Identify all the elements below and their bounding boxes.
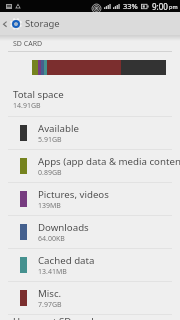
button[interactable]: Back	[0, 12, 180, 35]
staticText: Downloads	[38, 221, 89, 234]
staticText: Available	[38, 122, 79, 135]
button[interactable]: Misc.	[0, 282, 180, 314]
staticText: Pictures, videos	[38, 188, 109, 201]
staticText: Misc.	[38, 287, 62, 300]
button[interactable]: Downloads	[0, 216, 180, 248]
staticText: 9:00	[152, 1, 168, 12]
other: Back	[1, 20, 9, 28]
staticText: Total space	[13, 88, 64, 101]
button[interactable]: Pictures, videos	[0, 183, 180, 215]
staticText: 33%	[123, 1, 138, 11]
button[interactable]: Unmount SD card	[0, 315, 180, 320]
staticText: 0.89GB	[38, 168, 62, 178]
button[interactable]: Available	[0, 117, 180, 149]
staticText: Apps (app data & media content)	[38, 155, 180, 168]
staticText: 5.91GB	[38, 135, 62, 145]
staticText: Unmount SD card	[13, 315, 94, 320]
staticText: 14.91GB	[13, 101, 41, 111]
staticText: pm	[169, 3, 178, 10]
button[interactable]: Cached data	[0, 249, 180, 281]
staticText: 7.97GB	[38, 300, 62, 310]
staticText: 64.00KB	[38, 234, 65, 244]
staticText: 139MB	[38, 201, 61, 211]
button[interactable]: Apps (app data & media content)	[0, 150, 180, 182]
staticText: Storage	[25, 17, 60, 30]
staticText: SD CARD	[13, 39, 43, 49]
staticText: Cached data	[38, 254, 95, 267]
staticText: 13.41MB	[38, 267, 67, 277]
